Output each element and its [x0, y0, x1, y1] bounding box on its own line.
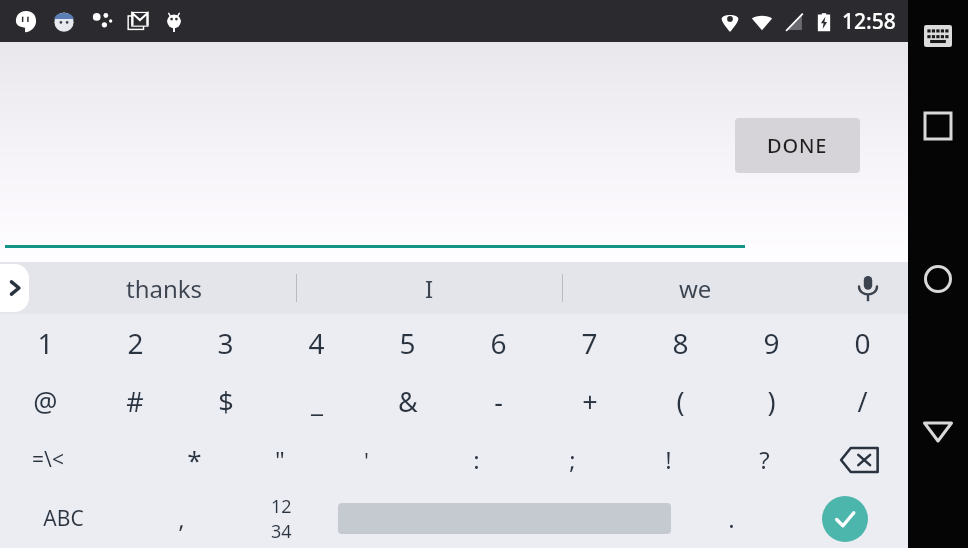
staticText: ?: [759, 443, 770, 476]
button[interactable]: :: [428, 430, 524, 489]
staticText: 12: [271, 494, 292, 519]
button[interactable]: &: [362, 372, 453, 430]
staticText: I: [425, 272, 434, 305]
button[interactable]: 8: [635, 314, 726, 372]
staticText: 7: [581, 324, 598, 362]
button[interactable]: DONE: [735, 118, 860, 173]
staticText: 34: [271, 519, 292, 544]
staticText: 9: [763, 324, 780, 362]
staticText: $: [218, 383, 234, 420]
button[interactable]: thanks: [32, 262, 296, 314]
staticText: &: [398, 383, 418, 420]
button[interactable]: -: [453, 372, 544, 430]
button[interactable]: =\<: [0, 430, 95, 489]
button[interactable]: Enter: [781, 489, 908, 548]
staticText: :: [473, 443, 480, 476]
button[interactable]: Recent apps: [916, 104, 960, 148]
button[interactable]: ): [726, 372, 817, 430]
staticText: 8: [672, 324, 689, 362]
staticText: 6: [490, 324, 507, 362]
staticText: =\<: [32, 445, 64, 474]
button[interactable]: Home: [916, 257, 960, 301]
staticText: _: [311, 383, 323, 420]
button[interactable]: ": [237, 430, 323, 489]
button[interactable]: _: [271, 372, 362, 430]
button[interactable]: I: [297, 262, 562, 314]
staticText: !: [665, 443, 672, 476]
staticText: ': [364, 445, 369, 475]
button[interactable]: $: [180, 372, 271, 430]
staticText: 5: [399, 324, 416, 362]
staticText: 12:58: [842, 7, 896, 36]
staticText: ): [767, 383, 776, 420]
button[interactable]: 4: [271, 314, 362, 372]
staticText: .: [728, 502, 735, 535]
button[interactable]: +: [544, 372, 635, 430]
button[interactable]: Space: [327, 497, 681, 540]
button[interactable]: ': [323, 430, 409, 489]
staticText: 1: [37, 324, 54, 362]
button[interactable]: *: [151, 430, 237, 489]
staticText: 0: [854, 324, 871, 362]
button[interactable]: 5: [362, 314, 453, 372]
staticText: ,: [178, 502, 185, 535]
button[interactable]: @: [0, 372, 90, 430]
button[interactable]: Hide keyboard: [916, 14, 960, 58]
staticText: -: [494, 383, 503, 420]
button[interactable]: ?: [716, 430, 812, 489]
staticText: #: [126, 383, 144, 420]
staticText: 4: [308, 324, 325, 362]
staticText: ": [275, 443, 285, 476]
staticText: *: [187, 442, 202, 477]
button[interactable]: 7: [544, 314, 635, 372]
button[interactable]: Back: [916, 410, 960, 454]
staticText: DONE: [767, 132, 828, 159]
staticText: 3: [217, 324, 234, 362]
staticText: thanks: [126, 272, 203, 305]
staticText: ;: [569, 443, 576, 476]
button[interactable]: Backspace: [812, 430, 908, 489]
button[interactable]: !: [620, 430, 716, 489]
button[interactable]: /: [817, 372, 908, 430]
staticText: +: [582, 383, 598, 420]
button[interactable]: .: [681, 489, 781, 548]
staticText: (: [676, 383, 685, 420]
staticText: we: [679, 272, 712, 305]
staticText: ABC: [43, 504, 84, 533]
button[interactable]: we: [563, 262, 828, 314]
button[interactable]: 1: [0, 314, 90, 372]
button[interactable]: ,: [127, 489, 236, 548]
button[interactable]: Expand suggestions: [0, 264, 29, 312]
button[interactable]: Voice input: [828, 262, 908, 314]
button[interactable]: ;: [524, 430, 620, 489]
button[interactable]: (: [635, 372, 726, 430]
button[interactable]: 2: [90, 314, 180, 372]
button[interactable]: 12: [236, 489, 327, 548]
button[interactable]: 9: [726, 314, 817, 372]
staticText: /: [857, 383, 868, 420]
button[interactable]: 3: [180, 314, 271, 372]
button[interactable]: #: [90, 372, 180, 430]
staticText: 2: [127, 324, 144, 362]
button[interactable]: ABC: [0, 489, 127, 548]
staticText: @: [33, 383, 58, 420]
button[interactable]: 0: [817, 314, 908, 372]
button[interactable]: 6: [453, 314, 544, 372]
